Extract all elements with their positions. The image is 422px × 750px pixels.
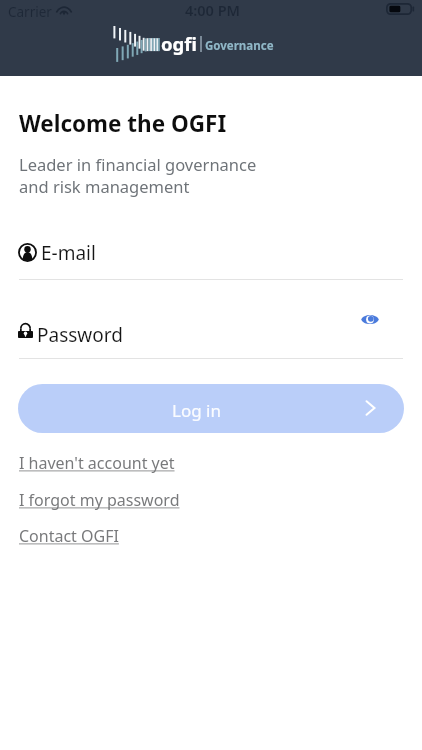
button[interactable]: Password	[19, 315, 403, 349]
button[interactable]: I forgot my password	[19, 489, 180, 511]
button[interactable]: Log in	[18, 384, 404, 433]
staticText: Password	[37, 322, 123, 348]
button[interactable]: Show password	[350, 299, 390, 339]
staticText: Governance	[205, 38, 274, 54]
staticText: Log in	[172, 399, 221, 422]
staticText: ogfi	[161, 31, 197, 56]
staticText: E-mail	[41, 240, 96, 266]
button[interactable]: E-mail	[19, 236, 403, 280]
staticText: 4:00 PM	[185, 0, 241, 20]
staticText: Welcome the OGFI	[19, 108, 227, 139]
button[interactable]: I haven't account yet	[19, 452, 175, 474]
staticText: I forgot my password	[19, 489, 180, 511]
staticText: Carrier	[8, 3, 52, 21]
button[interactable]: Contact OGFI	[19, 525, 119, 547]
staticText: Contact OGFI	[19, 525, 119, 547]
staticText: I haven't account yet	[19, 452, 175, 474]
staticText: Leader in financial governance and risk …	[19, 153, 257, 197]
